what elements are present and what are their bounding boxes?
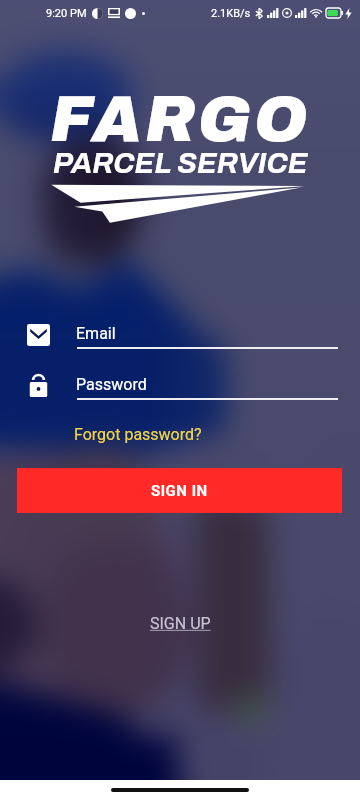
other: Email — [27, 324, 50, 346]
staticText: 2.1KB/s — [211, 7, 251, 20]
button[interactable]: SIGN IN — [17, 468, 342, 513]
button[interactable]: SIGN UP — [150, 614, 211, 633]
staticText: SIGN IN — [151, 482, 208, 500]
button[interactable]: Forgot password? — [74, 425, 202, 444]
staticText: Forgot password? — [74, 425, 202, 444]
staticText: 9:20 PM — [46, 7, 87, 20]
staticText: Email — [76, 324, 116, 343]
staticText: FARGO — [50, 85, 311, 155]
staticText: SIGN UP — [150, 614, 211, 633]
other: Password — [29, 374, 48, 398]
staticText: PARCEL SERVICE — [53, 148, 308, 180]
staticText: Password — [76, 375, 147, 394]
